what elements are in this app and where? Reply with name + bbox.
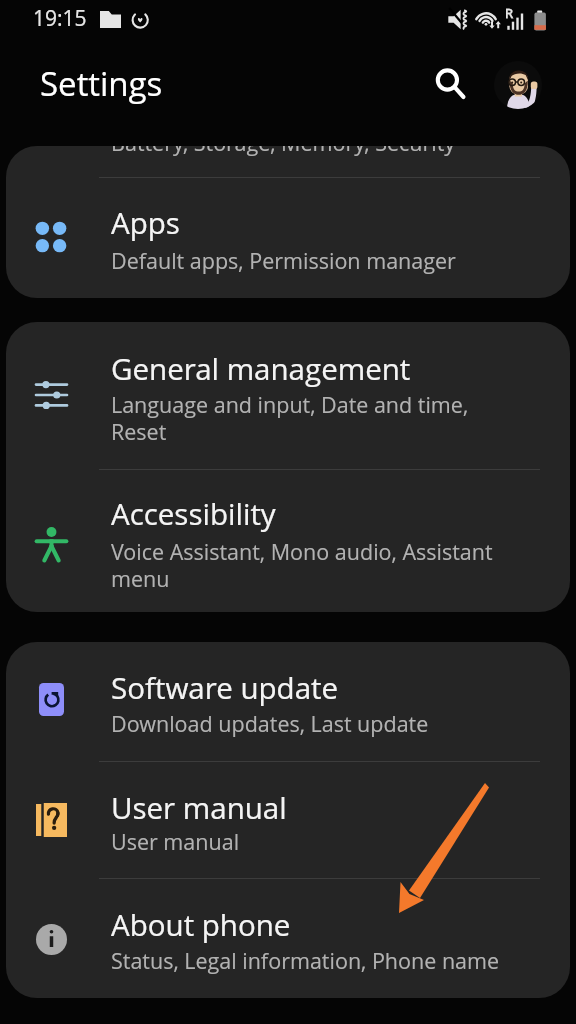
staticText: Software update — [111, 667, 517, 707]
staticText: Download updates, Last update — [111, 709, 517, 738]
staticText: User manual — [111, 827, 517, 856]
button[interactable]: General management — [6, 322, 570, 469]
button[interactable]: About phone — [6, 879, 570, 998]
button[interactable]: Software update — [6, 642, 570, 761]
staticText: Language and input, Date and time, Reset — [111, 390, 517, 446]
button[interactable]: Search — [421, 54, 473, 106]
button[interactable]: Apps — [6, 177, 570, 297]
staticText: General management — [111, 348, 517, 388]
staticText: About phone — [111, 904, 517, 944]
staticText: Settings — [40, 61, 163, 106]
staticText: Battery, Storage, Memory, Security — [111, 146, 570, 157]
staticText: R — [505, 4, 514, 22]
button[interactable]: Profile — [494, 61, 542, 109]
staticText: Default apps, Permission manager — [111, 246, 517, 275]
button[interactable]: Accessibility — [6, 470, 570, 612]
button[interactable]: User manual — [6, 762, 570, 878]
staticText: Apps — [111, 202, 517, 242]
staticText: Voice Assistant, Mono audio, Assistant m… — [111, 537, 517, 593]
staticText: Accessibility — [111, 493, 517, 533]
staticText: User manual — [111, 787, 517, 827]
staticText: 19:15 — [33, 4, 87, 33]
staticText: Status, Legal information, Phone name — [111, 946, 517, 975]
